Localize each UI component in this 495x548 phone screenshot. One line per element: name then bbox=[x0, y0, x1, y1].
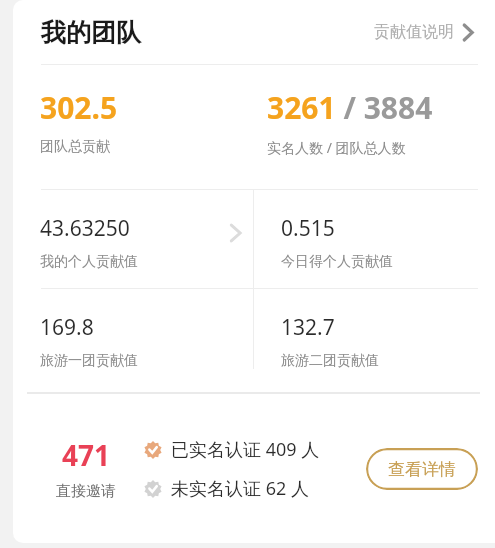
staticText: 我的个人贡献值 bbox=[40, 253, 138, 271]
staticText: 0.515 bbox=[281, 214, 335, 243]
staticText: 直接邀请 bbox=[56, 482, 116, 501]
staticText: 实名人数 / 团队总人数 bbox=[267, 138, 406, 157]
staticText: 302.5 bbox=[40, 87, 118, 128]
staticText: 43.63250 bbox=[40, 214, 130, 243]
staticText: 贡献值说明 bbox=[374, 22, 454, 42]
staticText: 旅游一团贡献值 bbox=[40, 352, 138, 370]
button[interactable]: 43.63250 bbox=[13, 190, 253, 288]
staticText: 旅游二团贡献值 bbox=[281, 352, 379, 370]
staticText: 查看详情 bbox=[388, 459, 456, 480]
button[interactable]: 贡献值说明 bbox=[374, 22, 473, 42]
staticText: 3261 / 3884 bbox=[267, 87, 433, 128]
staticText: 已实名认证 409 人 bbox=[171, 437, 320, 462]
staticText: 471 bbox=[62, 436, 111, 474]
staticText: 169.8 bbox=[40, 313, 94, 342]
staticText: 132.7 bbox=[281, 313, 335, 342]
staticText: 我的团队 bbox=[41, 17, 141, 48]
staticText: 今日得个人贡献值 bbox=[281, 253, 393, 271]
staticText: 未实名认证 62 人 bbox=[171, 476, 309, 501]
staticText: 团队总贡献 bbox=[40, 138, 110, 156]
button[interactable]: 查看详情 bbox=[366, 448, 478, 490]
